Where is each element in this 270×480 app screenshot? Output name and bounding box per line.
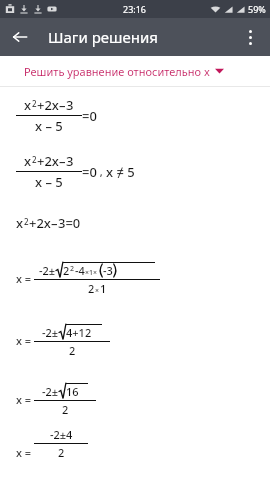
staticText: =0 bbox=[82, 163, 97, 181]
staticText: – bbox=[51, 214, 58, 232]
staticText: ×1× bbox=[85, 268, 98, 278]
staticText: -2± bbox=[42, 325, 59, 340]
staticText: -2±4 bbox=[50, 427, 73, 442]
staticText: 2 bbox=[32, 98, 37, 109]
staticText: x = bbox=[16, 392, 32, 407]
staticText: =0 bbox=[82, 107, 97, 125]
staticText: x = bbox=[16, 333, 32, 348]
button[interactable]: Back bbox=[4, 21, 36, 53]
staticText: 2 bbox=[63, 263, 70, 278]
staticText: -2± bbox=[39, 263, 56, 278]
staticText: 3 bbox=[66, 96, 74, 114]
staticText: +2x bbox=[29, 214, 51, 232]
button[interactable]: More options bbox=[234, 21, 266, 53]
staticText: Шаги решения bbox=[48, 27, 158, 47]
staticText: 16 bbox=[66, 384, 79, 399]
staticText: 23:16 bbox=[123, 3, 147, 15]
staticText: 2 bbox=[58, 445, 65, 460]
staticText: – bbox=[59, 152, 66, 170]
staticText: x ≠ 5 bbox=[106, 163, 135, 181]
staticText: +2x bbox=[37, 152, 59, 170]
staticText: x bbox=[16, 214, 24, 232]
staticText: 2 bbox=[32, 154, 37, 165]
staticText: 2 bbox=[62, 402, 69, 417]
staticText: Решить уравнение относительно x bbox=[24, 64, 210, 79]
staticText: 3 bbox=[66, 152, 74, 170]
staticText: 2 bbox=[88, 281, 95, 296]
staticText: -4 bbox=[75, 263, 85, 278]
staticText: +2x bbox=[37, 96, 59, 114]
staticText: x = bbox=[16, 445, 32, 460]
staticText: , bbox=[97, 164, 106, 179]
staticText: 4+12 bbox=[66, 325, 92, 340]
staticText: 1 bbox=[100, 281, 107, 296]
staticText: 2 bbox=[24, 216, 29, 227]
staticText: x bbox=[24, 152, 32, 170]
button[interactable]: Решить уравнение относительно x bbox=[0, 56, 270, 86]
staticText: 59% bbox=[248, 3, 266, 15]
staticText: x – 5 bbox=[35, 117, 63, 135]
staticText: 2 bbox=[70, 264, 75, 274]
staticText: 3=0 bbox=[58, 214, 81, 232]
staticText: 2 bbox=[69, 343, 76, 358]
staticText: × bbox=[95, 286, 100, 296]
staticText: x – 5 bbox=[35, 173, 63, 191]
staticText: x = bbox=[16, 271, 32, 286]
staticText: -3 bbox=[103, 263, 113, 278]
staticText: -2± bbox=[42, 384, 59, 399]
staticText: – bbox=[59, 96, 66, 114]
staticText: x bbox=[24, 96, 32, 114]
